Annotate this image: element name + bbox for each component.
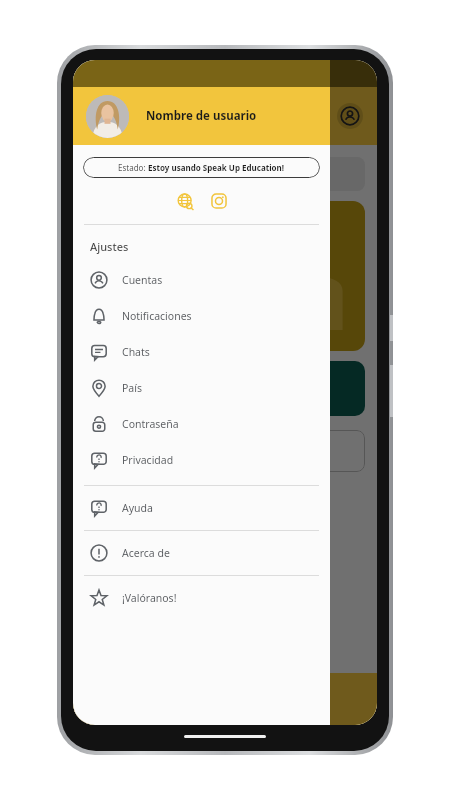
button[interactable]: Notificaciones	[73, 298, 330, 334]
button[interactable]: Chats	[73, 334, 330, 370]
button[interactable]: Privacidad	[73, 442, 330, 478]
staticText: Nombre de usuario	[146, 108, 257, 124]
staticText: Contraseña	[122, 417, 179, 431]
staticText: Privacidad	[122, 453, 174, 467]
staticText: Estoy usando Speak Up Education!	[148, 162, 285, 173]
staticText: Acerca de	[122, 546, 170, 560]
button[interactable]: Instagram	[207, 189, 231, 213]
staticText: Cuentas	[122, 273, 163, 287]
button[interactable]: Sitio web	[173, 189, 197, 213]
staticText: Ajustes	[90, 239, 129, 254]
staticText: Notificaciones	[122, 309, 192, 323]
staticText: Chats	[122, 345, 150, 359]
button[interactable]: ¡Valóranos!	[73, 580, 330, 616]
staticText: ¡Valóranos!	[122, 591, 177, 605]
button[interactable]: Contraseña	[73, 406, 330, 442]
button[interactable]: País	[73, 370, 330, 406]
staticText: País	[122, 381, 142, 395]
button[interactable]: Cuentas	[73, 262, 330, 298]
button[interactable]: Acerca de	[73, 535, 330, 571]
button[interactable]: Nombre de usuario	[73, 87, 330, 145]
button[interactable]: Ayuda	[73, 490, 330, 526]
staticText: Estado:	[118, 162, 148, 173]
staticText: Ayuda	[122, 501, 153, 515]
button[interactable]: Estado:	[83, 157, 320, 178]
